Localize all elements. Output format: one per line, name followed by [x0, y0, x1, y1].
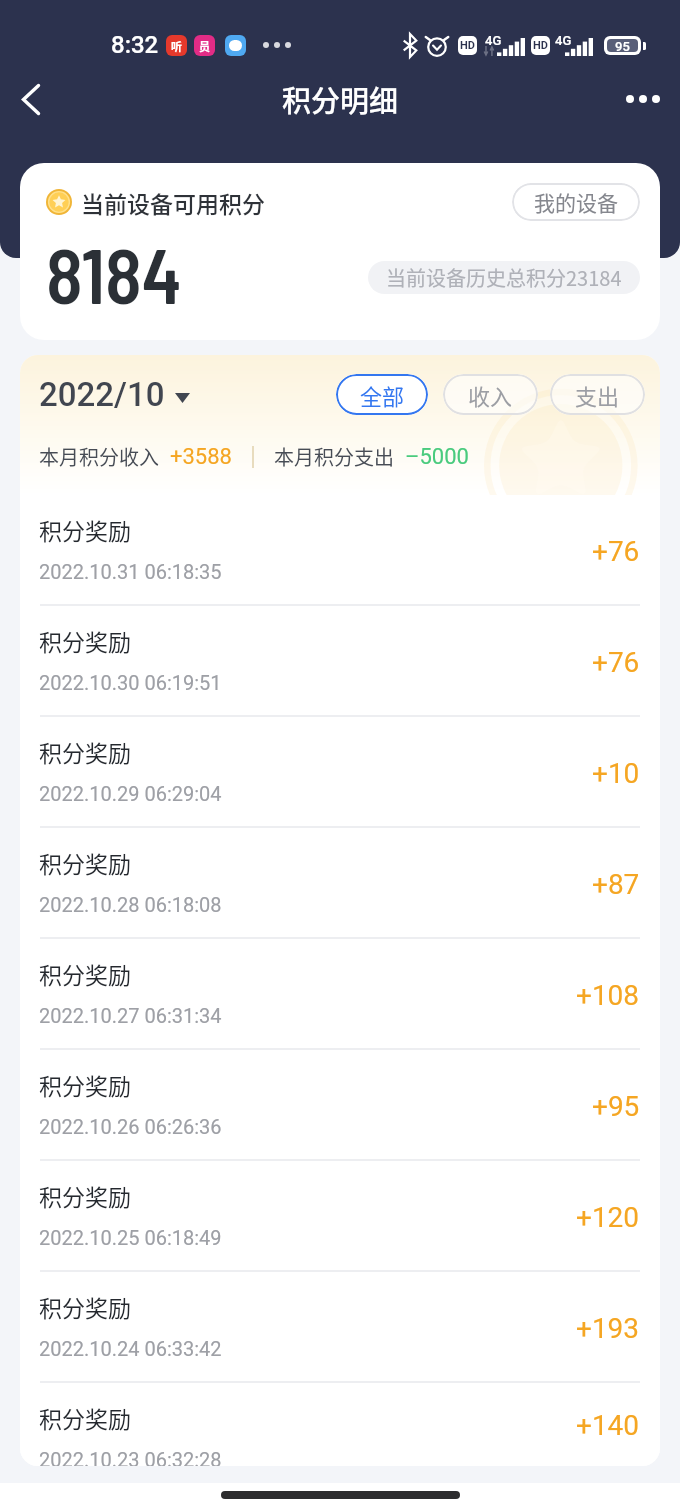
staticText: +3588 — [170, 444, 232, 470]
button[interactable]: 全部 — [336, 374, 428, 415]
staticText: +87 — [592, 868, 640, 901]
staticText: 积分奖励 — [39, 513, 131, 546]
button[interactable]: 积分奖励 — [20, 939, 660, 1050]
button[interactable]: 我的设备 — [512, 183, 640, 221]
staticText: +140 — [576, 1409, 640, 1442]
staticText: 积分奖励 — [39, 1179, 131, 1212]
staticText: 本月积分收入 — [39, 442, 159, 471]
staticText: 2022.10.24 06:33:42 — [39, 1337, 222, 1360]
staticText: 8184 — [46, 228, 182, 319]
staticText: +10 — [592, 757, 640, 790]
staticText: 积分明细 — [282, 78, 399, 120]
staticText: 2022.10.28 06:18:08 — [39, 893, 222, 916]
staticText: +108 — [576, 979, 640, 1012]
staticText: 95 — [615, 39, 630, 52]
button[interactable]: 积分奖励 — [20, 1161, 660, 1272]
staticText: 支出 — [575, 379, 620, 411]
staticText: 当前设备可用积分 — [81, 186, 265, 219]
staticText: 积分奖励 — [39, 957, 131, 990]
staticText: 2022/10 — [39, 375, 165, 414]
staticText: +95 — [592, 1090, 640, 1123]
button[interactable]: Back — [3, 71, 59, 127]
staticText: 积分奖励 — [39, 1068, 131, 1101]
staticText: 2022.10.29 06:29:04 — [39, 782, 222, 805]
staticText: 2022.10.25 06:18:49 — [39, 1226, 222, 1249]
button[interactable]: 积分奖励 — [20, 495, 660, 606]
staticText: 4G — [485, 33, 502, 48]
staticText: 收入 — [468, 379, 513, 411]
staticText: 员 — [199, 38, 210, 54]
button[interactable]: More options — [615, 71, 671, 127]
button[interactable]: 2022/10 — [39, 375, 190, 414]
staticText: +193 — [576, 1312, 640, 1345]
staticText: HD — [533, 39, 548, 52]
button[interactable]: 积分奖励 — [20, 606, 660, 717]
button[interactable]: 积分奖励 — [20, 1050, 660, 1161]
staticText: 积分奖励 — [39, 1401, 131, 1434]
button[interactable]: 积分奖励 — [20, 717, 660, 828]
staticText: 4G — [555, 33, 572, 48]
staticText: HD — [460, 39, 475, 52]
button[interactable]: 支出 — [550, 374, 645, 415]
staticText: +76 — [592, 535, 640, 568]
button[interactable]: 收入 — [443, 374, 538, 415]
staticText: 2022.10.23 06:32:28 — [39, 1448, 222, 1466]
staticText: 2022.10.30 06:19:51 — [39, 671, 222, 694]
staticText: 积分奖励 — [39, 846, 131, 879]
button[interactable]: 积分奖励 — [20, 1272, 660, 1383]
staticText: 2022.10.26 06:26:36 — [39, 1115, 222, 1138]
staticText: 2022.10.27 06:31:34 — [39, 1004, 222, 1027]
staticText: 积分奖励 — [39, 735, 131, 768]
staticText: 当前设备历史总积分23184 — [386, 263, 622, 292]
staticText: –5000 — [405, 444, 469, 470]
staticText: 8:32 — [111, 31, 159, 59]
staticText: 全部 — [360, 379, 405, 411]
staticText: 积分奖励 — [39, 624, 131, 657]
staticText: 本月积分支出 — [274, 442, 394, 471]
staticText: +76 — [592, 646, 640, 679]
staticText: 听 — [171, 38, 182, 54]
staticText: +120 — [576, 1201, 640, 1234]
button[interactable]: 积分奖励 — [20, 828, 660, 939]
staticText: 2022.10.31 06:18:35 — [39, 560, 222, 583]
staticText: 积分奖励 — [39, 1290, 131, 1323]
button[interactable]: 积分奖励 — [20, 1383, 660, 1466]
staticText: 我的设备 — [534, 187, 618, 217]
